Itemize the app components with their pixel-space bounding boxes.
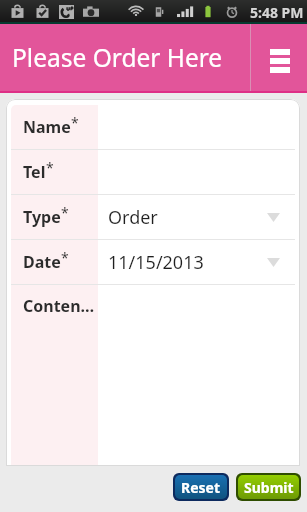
staticText: Name bbox=[23, 116, 71, 138]
staticText: Conten… bbox=[23, 295, 95, 317]
staticText: 11/15/2013 bbox=[108, 250, 204, 275]
staticText: Submit bbox=[244, 478, 294, 497]
button[interactable]: Reset bbox=[175, 475, 227, 499]
staticText: Date bbox=[23, 251, 61, 273]
staticText: 5:48 PM bbox=[250, 3, 304, 22]
staticText: Reset bbox=[181, 478, 221, 497]
staticText: * bbox=[61, 203, 69, 222]
staticText: Type bbox=[23, 206, 61, 228]
staticText: Order bbox=[108, 205, 158, 230]
staticText: * bbox=[71, 113, 79, 132]
staticText: * bbox=[61, 248, 69, 267]
staticText: Please Order Here bbox=[12, 41, 223, 74]
button[interactable]: Menu bbox=[250, 24, 307, 93]
staticText: Tel bbox=[23, 161, 46, 183]
staticText: * bbox=[46, 158, 54, 177]
button[interactable]: Submit bbox=[238, 475, 299, 499]
